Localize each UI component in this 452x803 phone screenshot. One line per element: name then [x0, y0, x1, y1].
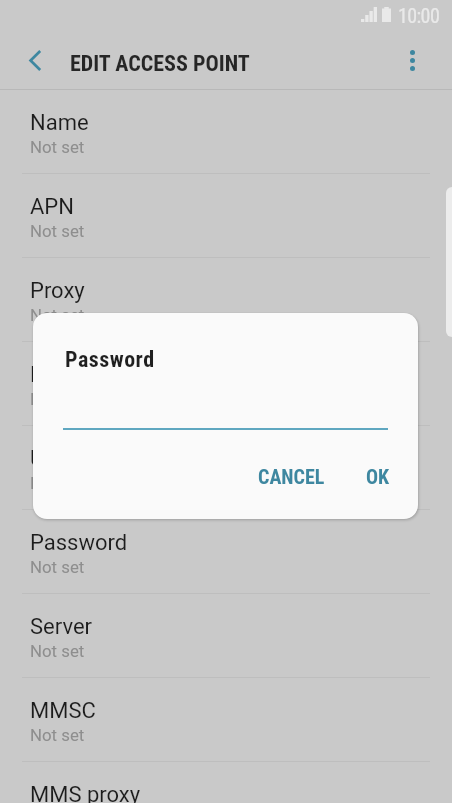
staticText: Name [30, 110, 89, 136]
staticText: Not set [30, 389, 85, 409]
staticText: Not set [30, 305, 85, 325]
button[interactable]: OK [356, 454, 400, 498]
staticText: Not set [30, 473, 85, 493]
staticText: Password [65, 347, 155, 373]
staticText: Not set [30, 641, 85, 661]
staticText: Username [30, 446, 130, 472]
button[interactable]: Password [0, 510, 452, 594]
button[interactable]: Server [0, 594, 452, 678]
staticText: MMSC [30, 698, 96, 724]
button[interactable]: APN [0, 174, 452, 258]
staticText: EDIT ACCESS POINT [70, 51, 250, 77]
button[interactable]: More options [396, 30, 452, 90]
staticText: Proxy [30, 278, 85, 304]
button[interactable]: CANCEL [248, 454, 335, 498]
staticText: 10:00 [398, 4, 440, 27]
staticText: CANCEL [258, 465, 325, 488]
staticText: Server [30, 614, 93, 640]
button[interactable]: MMSC [0, 678, 452, 762]
staticText: Not set [30, 557, 85, 577]
button[interactable]: Name [0, 90, 452, 174]
staticText: Not set [30, 725, 85, 745]
staticText: Not set [30, 137, 85, 157]
staticText: APN [30, 194, 74, 220]
button[interactable]: MMS proxy [0, 762, 452, 803]
staticText: Port [30, 362, 72, 388]
button[interactable]: Proxy [0, 258, 452, 342]
staticText: OK [366, 465, 390, 488]
staticText: Not set [30, 221, 85, 241]
button[interactable]: Username [0, 426, 452, 510]
staticText: Password [30, 530, 128, 556]
button[interactable]: Navigate up [0, 30, 56, 90]
staticText: MMS proxy [30, 782, 141, 803]
button[interactable]: Port [0, 342, 452, 426]
